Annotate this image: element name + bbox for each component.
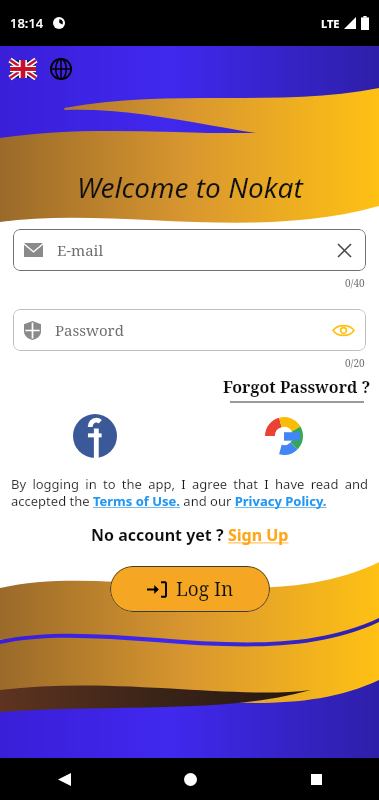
staticText: By logging in to the app, I agree that I… xyxy=(11,475,368,510)
button[interactable]: Forgot Password ? xyxy=(223,376,371,403)
button[interactable]: Sign in with Google xyxy=(261,413,307,459)
staticText: 18:14 xyxy=(10,14,44,32)
staticText: LTE xyxy=(321,16,340,31)
staticText: No account yet ? xyxy=(91,524,228,546)
button[interactable]: Change language xyxy=(48,56,74,82)
button[interactable]: Clear e-mail xyxy=(333,239,355,261)
button[interactable]: Show password xyxy=(331,318,355,342)
button[interactable]: Language English xyxy=(10,60,36,78)
button[interactable]: Home xyxy=(173,762,207,796)
staticText: Log In xyxy=(176,576,234,602)
button[interactable]: Recent apps xyxy=(299,762,333,796)
staticText: Sign Up xyxy=(228,524,289,546)
button[interactable]: By logging in to the app, I agree that I… xyxy=(11,475,368,510)
button[interactable]: Back xyxy=(47,762,81,796)
button[interactable]: Sign in with Facebook xyxy=(72,413,118,459)
staticText: E-mail xyxy=(57,240,104,260)
staticText: 0/40 xyxy=(345,276,365,290)
staticText: Forgot Password ? xyxy=(223,376,371,398)
staticText: 0/20 xyxy=(345,356,365,370)
button[interactable]: Log In xyxy=(110,566,270,612)
button[interactable]: Sign Up xyxy=(228,524,289,546)
staticText: Welcome to Nokat xyxy=(77,168,303,206)
button[interactable]: Password xyxy=(13,309,366,351)
button[interactable]: E-mail xyxy=(13,229,366,271)
staticText: Password xyxy=(55,320,124,340)
